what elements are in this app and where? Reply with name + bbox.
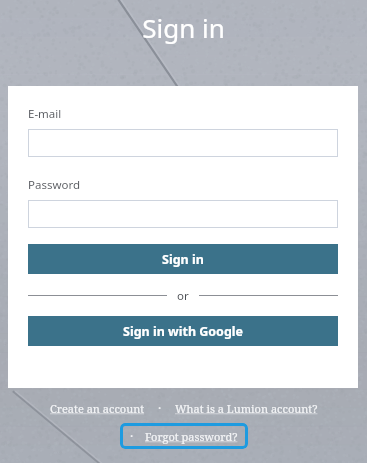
button[interactable] [28,129,338,157]
staticText: · [130,428,134,444]
button[interactable]: What is a Lumion account? [175,401,318,416]
staticText: What is a Lumion account? [175,401,318,416]
staticText: Create an account [50,401,145,416]
button[interactable] [28,200,338,228]
staticText: · [158,400,162,416]
button[interactable]: Create an account [50,401,145,416]
button[interactable]: Sign in with Google [28,316,338,346]
staticText: or [177,288,189,302]
button[interactable]: Sign in [28,244,338,274]
button[interactable]: Forgot password? [130,428,238,444]
staticText: Forgot password? [145,429,238,444]
staticText: E-mail [28,106,62,122]
staticText: Sign in [162,251,204,268]
staticText: Password [28,177,81,193]
staticText: Sign in [142,10,225,45]
staticText: Sign in with Google [123,323,244,340]
